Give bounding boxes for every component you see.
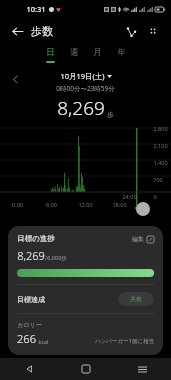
- button[interactable]: 週: [64, 44, 84, 66]
- staticText: kcal: [38, 338, 49, 345]
- staticText: 2,100: [153, 142, 168, 149]
- staticText: 24:00: [122, 193, 137, 200]
- staticText: 1,400: [153, 159, 168, 166]
- staticText: 8,269: [17, 248, 45, 263]
- staticText: 18:00: [112, 201, 127, 208]
- staticText: 8,269: [57, 95, 105, 121]
- staticText: 10月19日(土): [60, 71, 105, 81]
- staticText: 月: [93, 47, 102, 58]
- button[interactable]: 編集: [132, 235, 154, 243]
- button[interactable]: 日: [40, 44, 60, 66]
- button[interactable]: Share: [121, 21, 141, 41]
- button[interactable]: Home: [57, 358, 114, 380]
- staticText: 日: [46, 47, 55, 58]
- staticText: 2,800: [153, 125, 168, 132]
- button[interactable]: Back: [8, 22, 26, 40]
- staticText: 12:00: [78, 201, 93, 208]
- button[interactable]: 10月19日(土): [60, 71, 112, 81]
- staticText: 編集: [132, 235, 144, 243]
- staticText: カロリー: [17, 321, 42, 329]
- staticText: 週: [70, 47, 79, 58]
- staticText: 年: [117, 47, 126, 58]
- staticText: 0時00分〜23時59分: [56, 84, 115, 93]
- staticText: 歩: [107, 111, 114, 119]
- staticText: 共有: [130, 295, 142, 303]
- button[interactable]: 月: [87, 44, 107, 66]
- staticText: 266: [17, 331, 36, 346]
- button[interactable]: More options: [143, 21, 163, 41]
- button[interactable]: 共有: [118, 292, 154, 306]
- staticText: 700: [153, 176, 163, 183]
- button[interactable]: Previous day: [8, 72, 22, 86]
- staticText: 歩数: [31, 24, 53, 38]
- button[interactable]: 年: [111, 44, 131, 66]
- button[interactable]: Recents: [114, 358, 171, 380]
- staticText: /6,000歩: [45, 254, 67, 262]
- button[interactable]: Scrub chart: [136, 202, 150, 216]
- staticText: 6:00: [46, 201, 57, 208]
- staticText: 0:00: [12, 201, 23, 208]
- staticText: 目標の進捗: [17, 234, 55, 243]
- staticText: 10:31: [26, 4, 46, 14]
- staticText: 0: [153, 193, 157, 200]
- button[interactable]: Back: [0, 358, 57, 380]
- staticText: 目標達成: [17, 295, 45, 304]
- staticText: ハンバーガー1個に相当: [95, 337, 154, 345]
